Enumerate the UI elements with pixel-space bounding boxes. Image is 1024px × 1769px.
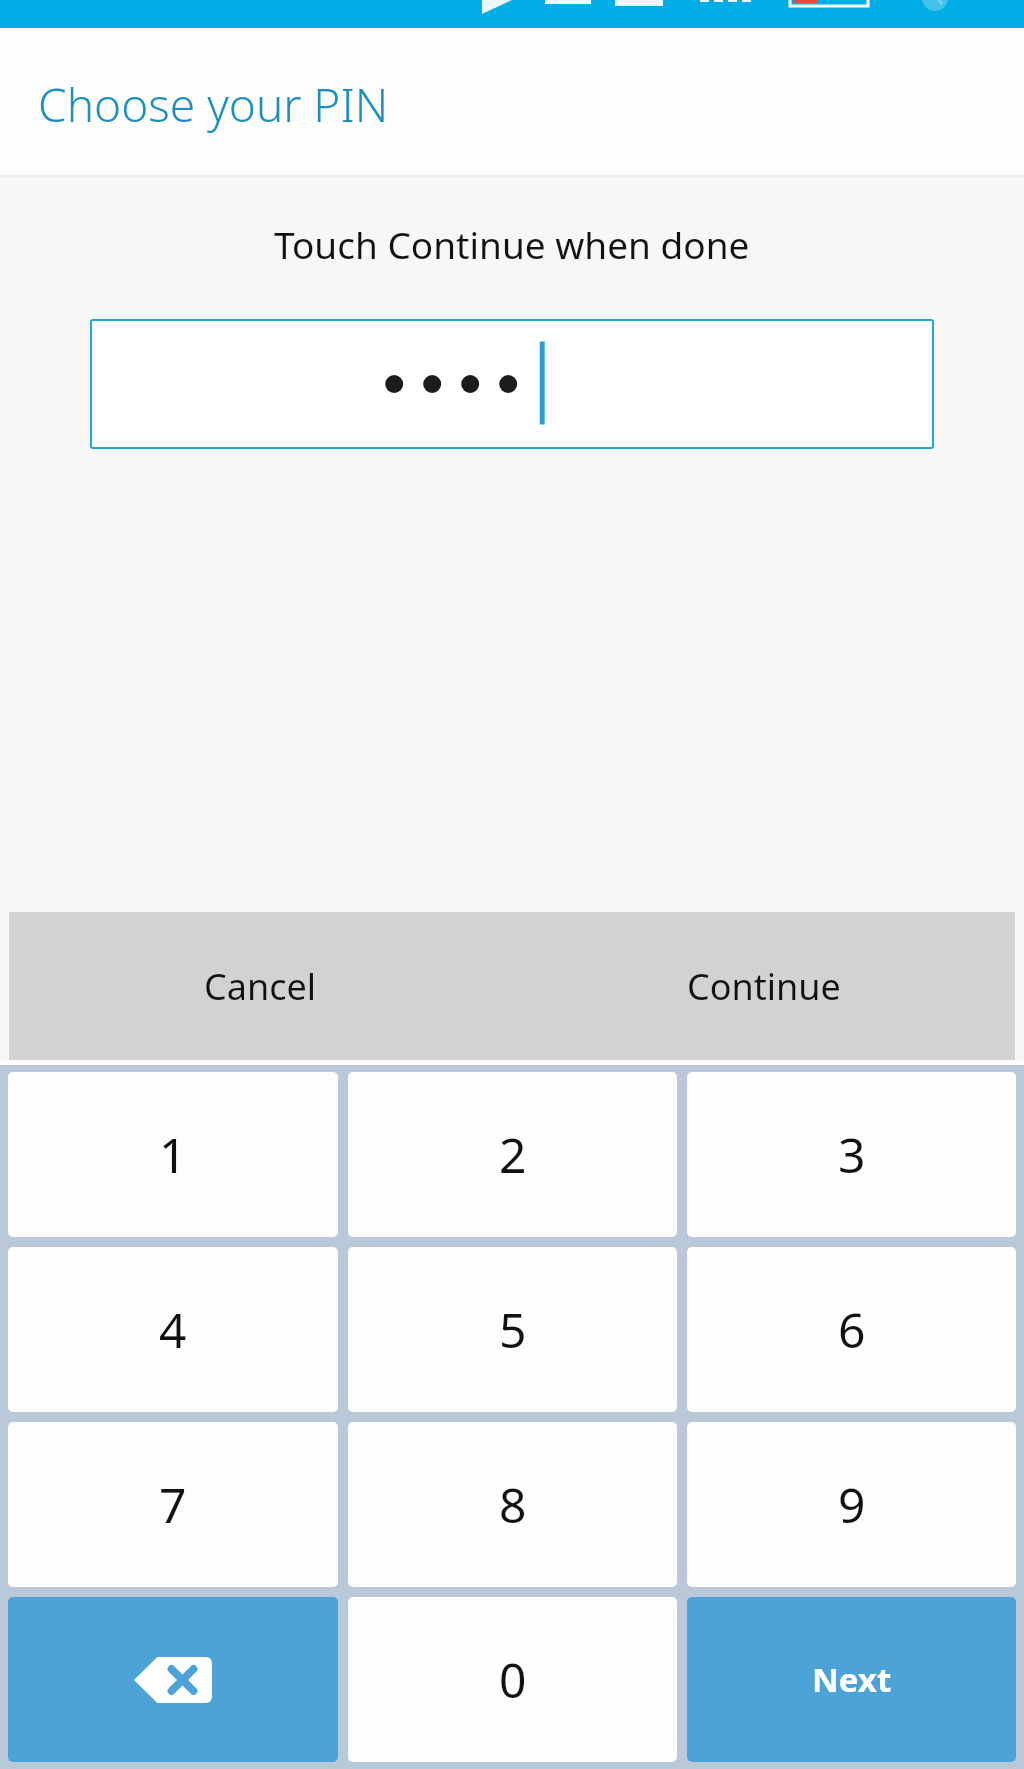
staticText: 7 xyxy=(159,1472,187,1537)
button[interactable]: 7 xyxy=(8,1422,338,1587)
staticText: 6 xyxy=(838,1297,866,1362)
button[interactable]: 5 xyxy=(348,1247,677,1412)
button[interactable]: 9 xyxy=(687,1422,1016,1587)
staticText: Continue xyxy=(687,962,841,1011)
button[interactable]: Continue xyxy=(512,912,1015,1060)
staticText: 8 xyxy=(499,1472,527,1537)
button[interactable] xyxy=(90,319,934,449)
button[interactable]: 2 xyxy=(348,1072,677,1237)
staticText: Touch Continue when done xyxy=(274,219,750,269)
staticText: Choose your PIN xyxy=(38,73,389,136)
staticText: 9 xyxy=(838,1472,866,1537)
staticText: 2 xyxy=(499,1122,527,1187)
staticText: 4 xyxy=(159,1297,187,1362)
button[interactable]: 8 xyxy=(348,1422,677,1587)
button[interactable]: Next xyxy=(687,1597,1016,1762)
button[interactable]: 3 xyxy=(687,1072,1016,1237)
button[interactable]: 0 xyxy=(348,1597,677,1762)
button[interactable]: 1 xyxy=(8,1072,338,1237)
button[interactable]: Cancel xyxy=(9,912,512,1060)
staticText: Next xyxy=(812,1657,892,1702)
button[interactable]: 6 xyxy=(687,1247,1016,1412)
staticText: Cancel xyxy=(204,962,317,1011)
staticText: 3 xyxy=(838,1122,866,1187)
button[interactable]: Backspace xyxy=(8,1597,338,1762)
button[interactable]: 4 xyxy=(8,1247,338,1412)
staticText: 1 xyxy=(159,1122,187,1187)
staticText: 5 xyxy=(499,1297,527,1362)
staticText: 0 xyxy=(499,1647,527,1712)
